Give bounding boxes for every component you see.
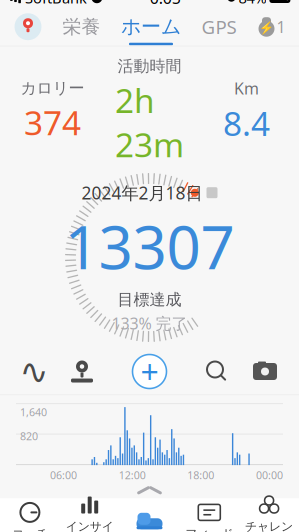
staticText: 1,640 [20, 405, 47, 419]
staticText: 栄養 [62, 15, 100, 38]
staticText: ホーム [121, 14, 181, 39]
staticText: 820 [20, 429, 38, 443]
staticText: Km [234, 78, 259, 99]
button[interactable]: Activity [121, 498, 177, 532]
button[interactable]: Search [193, 350, 241, 392]
staticText: ⚡ [259, 21, 274, 35]
button[interactable]: Streak [251, 10, 291, 44]
staticText: フィード [185, 526, 233, 532]
staticText: 12:00 [119, 468, 146, 482]
staticText: ∿ [19, 352, 48, 391]
staticText: SoftBank [25, 0, 87, 7]
button[interactable]: Add activity [121, 348, 177, 394]
staticText: 84% [238, 0, 266, 7]
staticText: 13307 [64, 206, 234, 286]
staticText: + [140, 350, 158, 393]
staticText: 0:05 [150, 0, 181, 8]
staticText: カロリー [20, 78, 84, 98]
button[interactable]: Location [58, 350, 106, 392]
staticText: 133% 完了 [111, 313, 187, 334]
staticText: 374 [24, 100, 81, 144]
staticText: 活動時間 [117, 56, 181, 76]
button[interactable]: Route [10, 350, 58, 392]
staticText: 2024年2月18日 [81, 181, 202, 204]
button[interactable]: Camera [241, 350, 289, 392]
staticText: 18:00 [187, 468, 214, 482]
button[interactable]: 栄養 [56, 10, 106, 44]
staticText: チャレンジ [245, 519, 293, 532]
button[interactable]: Expand [119, 482, 179, 498]
staticText: 00:00 [256, 468, 283, 482]
button[interactable]: コーチ [0, 498, 60, 532]
button[interactable]: フィード [179, 498, 239, 532]
button[interactable]: チャレンジ [239, 498, 299, 532]
staticText: GPS [201, 14, 236, 39]
staticText: 目標達成 [117, 290, 181, 310]
button[interactable]: ホーム [115, 8, 187, 45]
staticText: 8.4 [223, 101, 270, 145]
staticText: 06:00 [50, 468, 77, 482]
staticText: 2h 23m [115, 78, 184, 166]
button[interactable]: GPS [195, 10, 242, 44]
button[interactable]: Map [8, 10, 48, 44]
staticText: 1 [276, 16, 285, 37]
button[interactable]: インサイト [60, 498, 120, 532]
staticText: インサイト [66, 519, 114, 532]
staticText: コーチ [12, 526, 48, 532]
